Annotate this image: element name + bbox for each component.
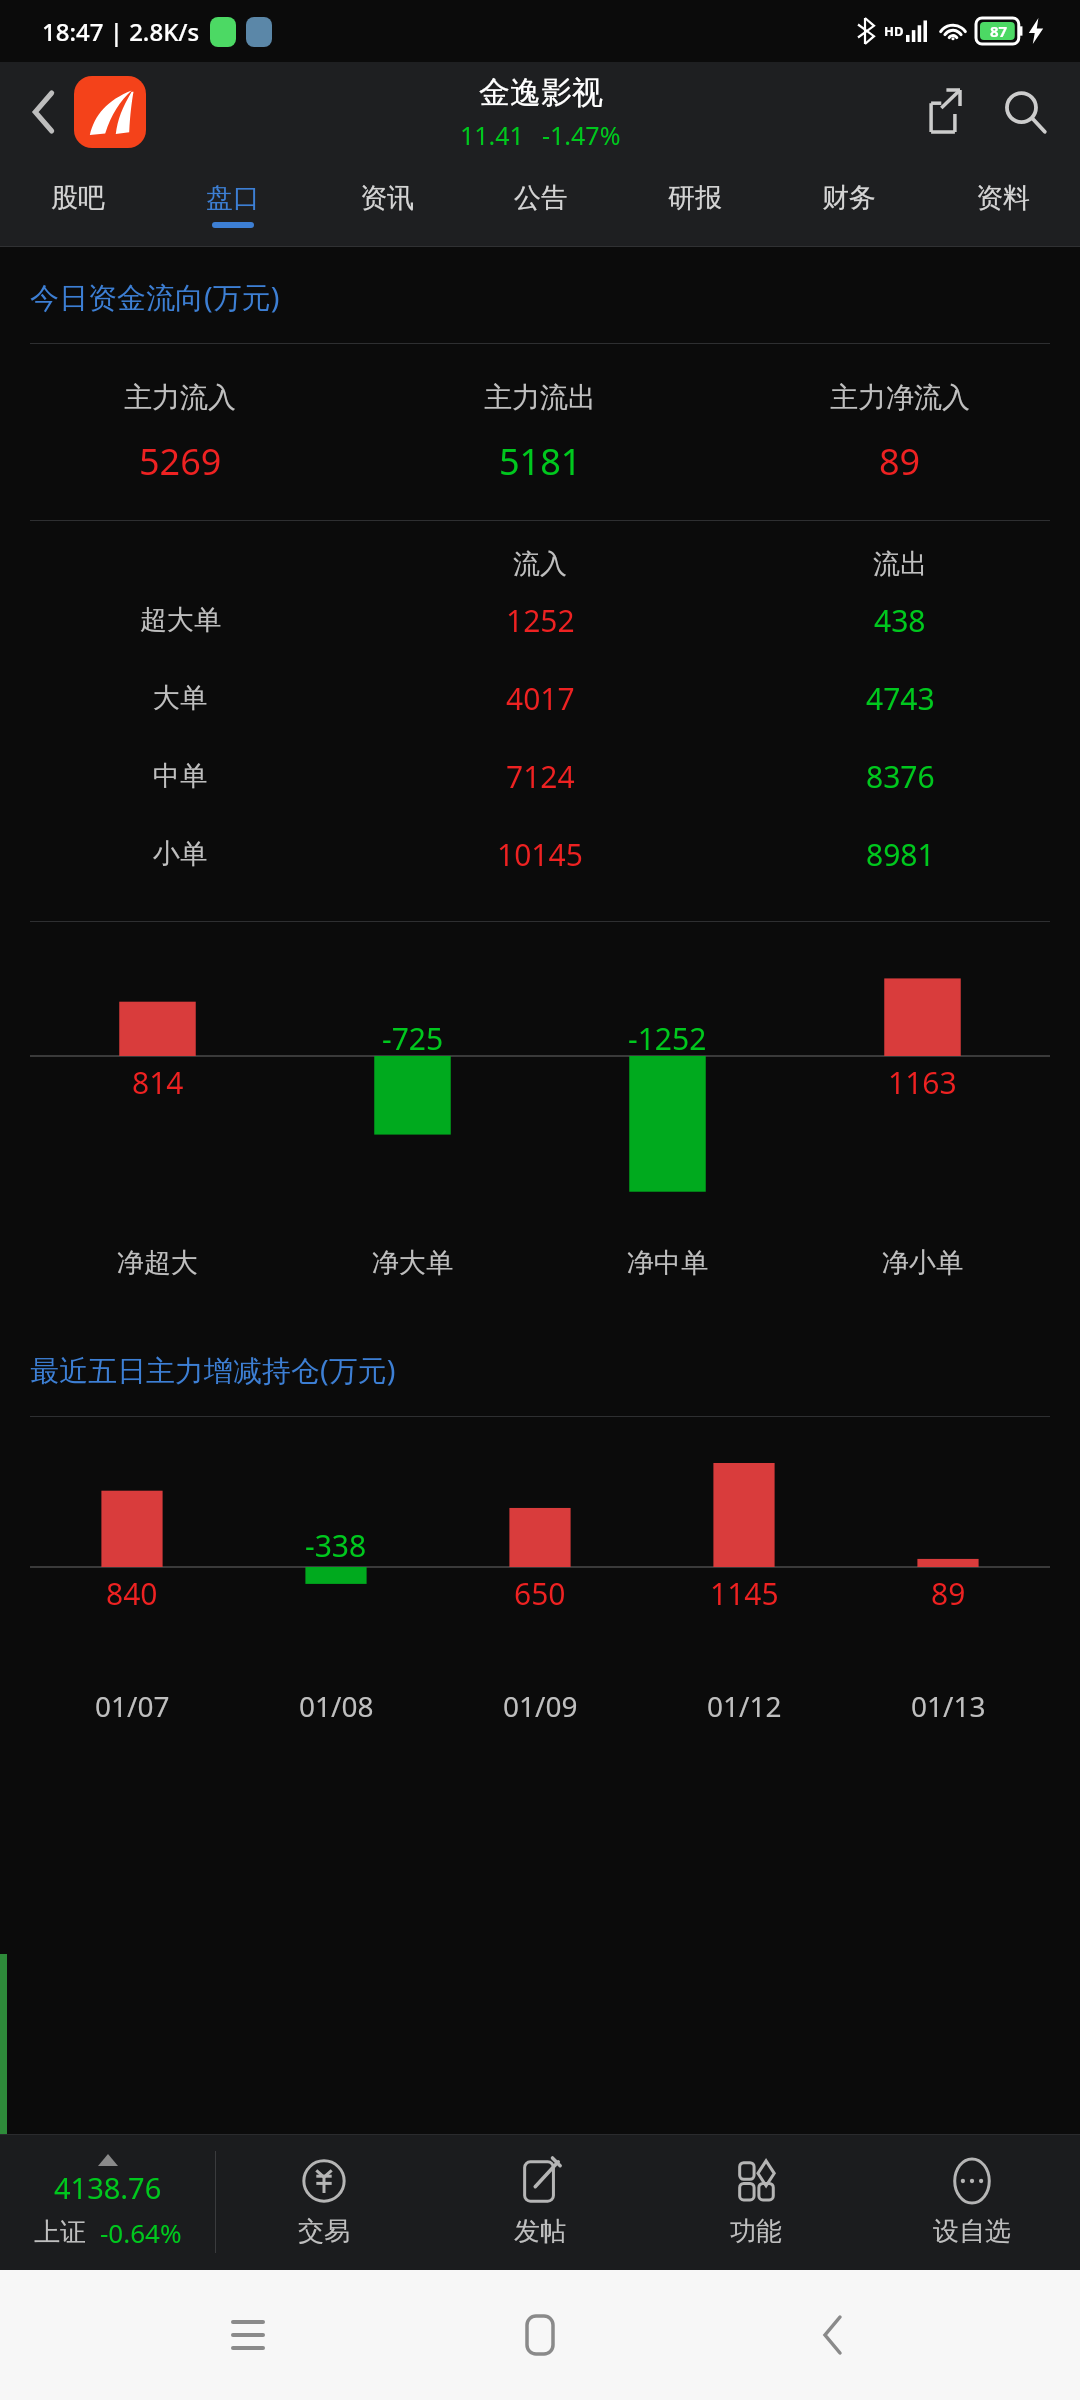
staticText: 公告 <box>514 181 568 215</box>
staticText: 净小单 <box>882 1246 963 1280</box>
staticText: -725 <box>382 1018 444 1059</box>
staticText: 8981 <box>866 834 935 875</box>
staticText: 发帖 <box>514 2215 566 2248</box>
staticText: 财务 <box>822 181 876 215</box>
button[interactable]: 超大单 <box>0 581 1080 659</box>
staticText: 最近五日主力增减持仓(万元) <box>30 1350 396 1390</box>
staticText: 净中单 <box>627 1246 708 1280</box>
staticText: 840 <box>106 1573 158 1614</box>
staticText: HD <box>884 22 904 40</box>
button[interactable]: 交易 <box>216 2134 432 2270</box>
button[interactable]: 盘口 <box>155 162 310 247</box>
staticText: 814 <box>132 1062 184 1103</box>
staticText: 87 <box>990 21 1008 41</box>
staticText: 交易 <box>298 2215 350 2248</box>
staticText: 8376 <box>866 756 935 797</box>
button[interactable]: Home <box>495 2290 585 2380</box>
button[interactable]: 4138.76 <box>0 2134 215 2270</box>
staticText: 01/07 <box>95 1687 170 1725</box>
button[interactable]: 股吧 <box>0 162 155 247</box>
staticText: 7124 <box>506 756 575 797</box>
button[interactable]: 研报 <box>618 162 772 247</box>
button[interactable]: 发帖 <box>432 2134 648 2270</box>
staticText: 金逸影视 <box>479 73 603 112</box>
staticText: 研报 <box>668 181 722 215</box>
staticText: 5269 <box>139 437 222 486</box>
staticText: 大单 <box>153 681 207 715</box>
staticText: 1252 <box>506 600 575 641</box>
staticText: 主力流入 <box>124 380 236 415</box>
staticText: 今日资金流向(万元) <box>30 277 280 317</box>
staticText: 流出 <box>873 547 927 581</box>
staticText: -1252 <box>628 1018 707 1059</box>
staticText: 小单 <box>153 837 207 871</box>
button[interactable]: 中单 <box>0 737 1080 815</box>
staticText: 89 <box>879 437 921 486</box>
staticText: 11.41 <box>460 118 524 152</box>
button[interactable]: 设自选 <box>864 2134 1080 2270</box>
staticText: 01/12 <box>707 1687 782 1725</box>
staticText: 主力流出 <box>484 380 596 415</box>
staticText: 01/08 <box>299 1687 374 1725</box>
staticText: 1145 <box>710 1573 779 1614</box>
staticText: 流入 <box>513 547 567 581</box>
staticText: 01/09 <box>503 1687 578 1725</box>
staticText: -0.64% <box>100 2215 182 2250</box>
button[interactable]: App logo <box>74 76 146 148</box>
staticText: 功能 <box>730 2215 782 2248</box>
button[interactable]: 大单 <box>0 659 1080 737</box>
staticText: 4017 <box>506 678 575 719</box>
staticText: 10145 <box>497 834 583 875</box>
staticText: 4138.76 <box>54 2168 162 2207</box>
staticText: 4743 <box>866 678 935 719</box>
staticText: -1.47% <box>542 118 621 152</box>
button[interactable]: Share <box>908 77 978 147</box>
staticText: -338 <box>305 1525 367 1566</box>
button[interactable]: 资讯 <box>310 162 464 247</box>
staticText: 中单 <box>153 759 207 793</box>
staticText: 650 <box>514 1573 566 1614</box>
staticText: 超大单 <box>140 603 221 637</box>
button[interactable]: 财务 <box>772 162 926 247</box>
staticText: 盘口 <box>206 181 260 215</box>
button[interactable]: 小单 <box>0 815 1080 893</box>
button[interactable]: 资料 <box>926 162 1080 247</box>
staticText: 89 <box>931 1573 966 1614</box>
button[interactable]: Back <box>788 2290 878 2380</box>
button[interactable]: 公告 <box>464 162 618 247</box>
staticText: 上证 <box>34 2216 86 2249</box>
staticText: 01/13 <box>911 1687 986 1725</box>
staticText: 1163 <box>888 1062 957 1103</box>
staticText: 股吧 <box>51 181 105 215</box>
staticText: 设自选 <box>933 2215 1011 2248</box>
button[interactable]: 功能 <box>648 2134 864 2270</box>
staticText: 净超大 <box>117 1246 198 1280</box>
staticText: 主力净流入 <box>830 380 970 415</box>
button[interactable]: Back <box>16 84 72 140</box>
staticText: 净大单 <box>372 1246 453 1280</box>
staticText: 438 <box>874 600 926 641</box>
staticText: 资讯 <box>360 181 414 215</box>
staticText: 资料 <box>976 181 1030 215</box>
button[interactable]: Search <box>990 77 1060 147</box>
staticText: 5181 <box>499 437 582 486</box>
button[interactable]: Recents <box>203 2290 293 2380</box>
staticText: 18:47 | 2.8K/s <box>42 15 200 48</box>
